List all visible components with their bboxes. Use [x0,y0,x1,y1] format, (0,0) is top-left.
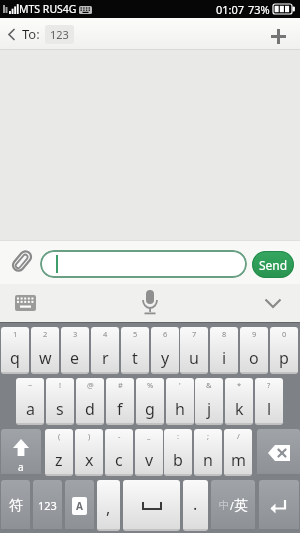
staticText: 3 [73,329,78,339]
staticText: a [18,460,24,474]
staticText: m [231,449,246,471]
button[interactable]: ; [194,429,222,476]
staticText: d [85,398,95,420]
button[interactable]: * [225,378,253,425]
staticText: x [85,449,94,471]
staticText: @ [87,380,94,390]
button[interactable]: / [224,429,252,476]
staticText: MTS RUS4G [19,2,77,16]
button[interactable] [256,288,290,318]
staticText: A [76,499,83,513]
staticText: . [193,493,198,515]
button[interactable]: : [164,429,192,476]
button[interactable] [40,250,247,278]
staticText: q [10,347,20,369]
button[interactable]: ! [46,378,74,425]
button[interactable] [7,244,37,278]
staticText: - [118,431,121,441]
button[interactable]: 3 [61,327,89,374]
button[interactable]: 0 [270,327,298,374]
button[interactable]: 5 [121,327,149,374]
staticText: v [145,449,154,471]
button[interactable]: Send [252,251,294,278]
staticText: 9 [252,329,257,339]
staticText: n [203,449,213,471]
staticText: / [230,499,234,513]
staticText: 6 [163,329,168,339]
button[interactable]: ( [45,429,73,476]
staticText: t [132,347,138,369]
button[interactable]: ' [166,378,194,425]
staticText: i [222,347,227,369]
staticText: e [70,347,80,369]
staticText: ~ [28,380,33,390]
button[interactable]: ~ [16,378,44,425]
staticText: b [173,449,183,471]
staticText: a [26,398,35,420]
button[interactable] [257,429,300,476]
button[interactable]: 符 [1,480,30,531]
button[interactable]: . [183,480,208,531]
button[interactable]: 4 [91,327,119,374]
staticText: / [237,431,240,441]
button[interactable] [259,480,299,531]
staticText: 01:07 [216,2,245,17]
button[interactable] [130,286,170,320]
staticText: f [117,398,123,420]
button[interactable]: ? [255,378,283,425]
staticText: l [267,398,272,420]
staticText: p [279,347,289,369]
button[interactable]: 123 [50,27,69,42]
staticText: % [147,380,154,390]
staticText: r [102,347,109,369]
staticText: 7 [192,329,197,339]
staticText: j [207,398,212,420]
staticText: 2 [43,329,48,339]
staticText: ( [58,431,61,441]
staticText: 8 [222,329,227,339]
button[interactable]: ) [75,429,103,476]
staticText: # [118,380,123,390]
staticText: s [56,398,64,420]
staticText: Send [259,257,288,273]
staticText: To: [22,25,40,43]
staticText: 1 [13,329,18,339]
button[interactable]: 2 [31,327,59,374]
button[interactable] [0,18,22,50]
staticText: ? [267,380,271,390]
button[interactable]: 7 [180,327,208,374]
button[interactable]: , [97,480,120,531]
button[interactable]: @ [76,378,104,425]
staticText: h [175,398,185,420]
button[interactable]: 8 [210,327,238,374]
staticText: ) [88,431,91,441]
button[interactable]: & [195,378,223,425]
staticText: z [55,449,63,471]
staticText: g [145,398,155,420]
button[interactable]: % [136,378,164,425]
staticText: 5 [133,329,138,339]
staticText: : [177,431,180,441]
button[interactable]: 6 [151,327,179,374]
staticText: o [249,347,259,369]
button[interactable]: 1 [1,327,29,374]
staticText: w [39,347,52,369]
button[interactable] [256,18,300,50]
button[interactable]: 9 [240,327,268,374]
staticText: 123 [50,27,69,42]
button[interactable] [8,288,42,318]
button[interactable] [123,480,180,531]
button[interactable]: - [105,429,133,476]
staticText: 73% [248,2,270,17]
button[interactable]: _ [135,429,163,476]
button[interactable]: A [65,480,94,531]
button[interactable]: 123 [33,480,62,531]
staticText: k [235,398,244,420]
button[interactable]: 中 [211,480,255,531]
staticText: _ [147,431,151,441]
staticText: ! [59,380,62,390]
staticText: & [206,380,212,390]
button[interactable]: # [106,378,134,425]
button[interactable]: a [1,429,41,476]
staticText: 中 [219,499,230,512]
